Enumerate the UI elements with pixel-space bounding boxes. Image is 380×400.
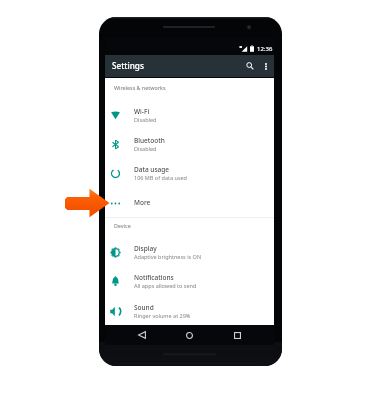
button[interactable]: More options [257, 57, 274, 75]
button[interactable]: More [105, 189, 274, 217]
staticText: Wireless & networks [114, 84, 166, 91]
staticText: Sound [134, 303, 154, 312]
staticText: Disabled [134, 145, 157, 152]
staticText: Bluetooth [134, 136, 165, 145]
staticText: More [134, 198, 151, 207]
button[interactable]: Sound [105, 297, 274, 326]
staticText: Display [134, 244, 157, 253]
button[interactable]: Recent apps [228, 326, 246, 344]
staticText: Device [114, 222, 131, 229]
staticText: Ringer volume at 29% [134, 312, 191, 319]
staticText: Notifications [134, 273, 174, 282]
button[interactable]: Data usage [105, 159, 274, 188]
staticText: Settings [112, 60, 144, 71]
staticText: Data usage [134, 165, 170, 174]
staticText: All apps allowed to send [134, 282, 197, 289]
button[interactable]: Notifications [105, 267, 274, 296]
staticText: 106 MB of data used [134, 174, 187, 181]
button[interactable]: Back [133, 326, 151, 344]
staticText: Wi-Fi [134, 107, 150, 116]
staticText: Adaptive brightness is ON [134, 253, 202, 260]
button[interactable]: Search [241, 57, 259, 75]
button[interactable]: Display [105, 238, 274, 267]
button[interactable]: Wi-Fi [105, 101, 274, 130]
staticText: Disabled [134, 116, 157, 123]
button[interactable]: Bluetooth [105, 130, 274, 159]
button[interactable]: Home [180, 326, 198, 344]
staticText: 12:36 [257, 45, 273, 53]
